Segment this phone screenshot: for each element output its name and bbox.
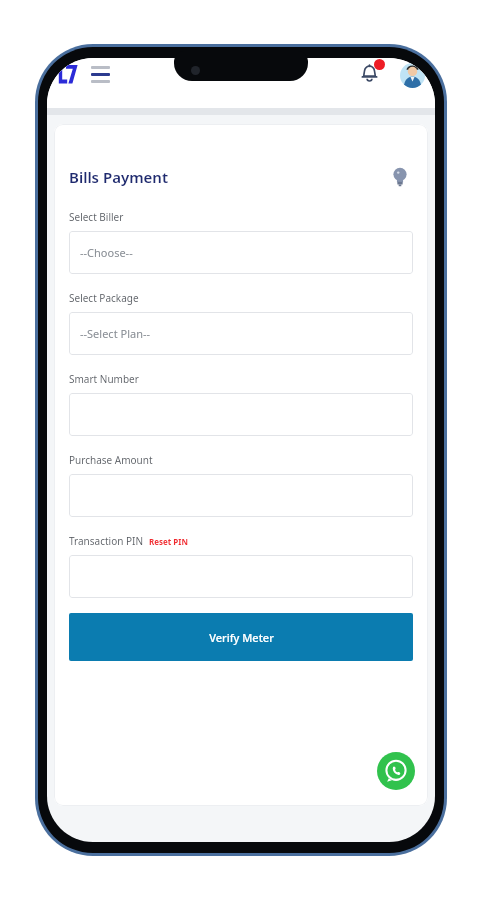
button[interactable]: Notifications [356, 58, 386, 88]
staticText: Smart Number [69, 372, 139, 386]
button[interactable] [69, 555, 413, 598]
staticText: Select Package [69, 291, 139, 305]
staticText: Verify Meter [209, 630, 274, 645]
staticText: Reset PIN [149, 536, 188, 547]
button[interactable]: Reset PIN [149, 536, 188, 547]
button[interactable] [69, 474, 413, 517]
staticText: Bills Payment [69, 167, 168, 187]
button[interactable]: Home logo [55, 61, 81, 87]
staticText: --Select Plan-- [80, 326, 151, 341]
staticText: Transaction PIN [69, 534, 144, 548]
staticText: Purchase Amount [69, 453, 153, 467]
button[interactable]: --Select Plan-- [69, 312, 413, 355]
staticText: --Choose-- [80, 245, 133, 260]
staticText: Select Biller [69, 210, 124, 224]
button[interactable]: Menu [87, 61, 113, 87]
button[interactable]: Verify Meter [69, 613, 413, 661]
button[interactable]: --Choose-- [69, 231, 413, 274]
button[interactable]: Chat on WhatsApp [377, 752, 415, 790]
button[interactable] [69, 393, 413, 436]
button[interactable]: Tips [387, 164, 413, 190]
button[interactable]: Profile [400, 63, 425, 88]
